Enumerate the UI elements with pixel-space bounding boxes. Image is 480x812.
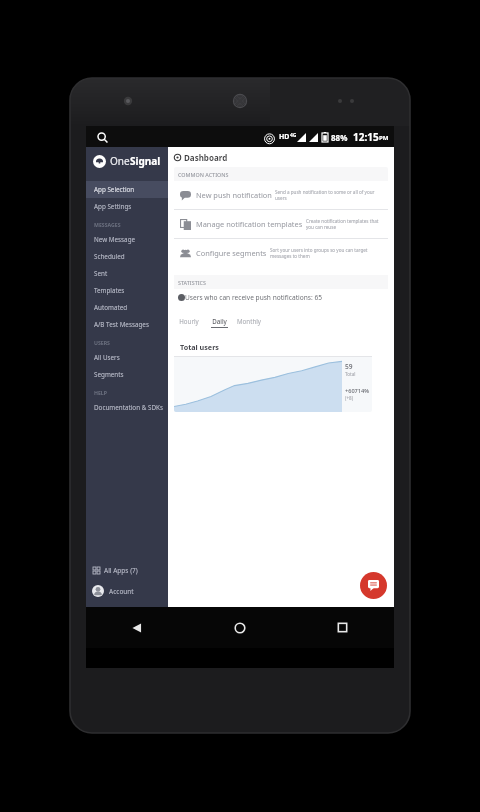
staticText: App Settings bbox=[94, 202, 132, 211]
button[interactable]: Back bbox=[86, 607, 188, 648]
staticText: STATISTICS bbox=[178, 279, 206, 286]
staticText: Automated bbox=[94, 303, 128, 312]
staticText: PM bbox=[379, 134, 389, 142]
staticText: Monthly bbox=[237, 317, 261, 325]
button[interactable]: Search bbox=[94, 129, 110, 145]
staticText: Templates bbox=[94, 286, 125, 295]
staticText: Dashboard bbox=[184, 152, 228, 163]
staticText: Sent bbox=[94, 269, 108, 278]
staticText: A/B Test Messages bbox=[94, 320, 149, 329]
button[interactable]: Documentation & SDKs bbox=[86, 399, 168, 416]
button[interactable]: Templates bbox=[86, 282, 168, 299]
staticText: Configure segments bbox=[196, 248, 267, 258]
staticText: COMMON ACTIONS bbox=[178, 171, 229, 178]
button[interactable]: Automated bbox=[86, 299, 168, 316]
staticText: One bbox=[110, 154, 130, 168]
staticText: Total bbox=[345, 371, 356, 377]
staticText: (+8) bbox=[345, 395, 354, 401]
staticText: USERS bbox=[94, 339, 110, 346]
button[interactable]: All Users bbox=[86, 349, 168, 366]
staticText: Documentation & SDKs bbox=[94, 403, 163, 412]
staticText: Total users bbox=[180, 342, 219, 352]
button[interactable]: Account bbox=[86, 579, 168, 603]
staticText: 12:15 bbox=[353, 130, 379, 144]
button[interactable]: A/B Test Messages bbox=[86, 316, 168, 333]
button[interactable]: Configure segments bbox=[174, 239, 388, 267]
button[interactable]: All Apps (7) bbox=[86, 561, 168, 579]
staticText: +60714% bbox=[345, 387, 369, 395]
staticText: Signal bbox=[130, 154, 161, 168]
staticText: HELP bbox=[94, 389, 107, 396]
button[interactable]: App Selection bbox=[86, 181, 168, 198]
button[interactable]: New Message bbox=[86, 231, 168, 248]
button[interactable]: Home bbox=[188, 607, 291, 648]
button[interactable]: One bbox=[86, 147, 168, 175]
staticText: MESSAGES bbox=[94, 221, 121, 228]
button[interactable]: Hourly bbox=[174, 315, 204, 330]
button[interactable]: App Settings bbox=[86, 198, 168, 215]
staticText: All Apps (7) bbox=[104, 566, 138, 575]
button[interactable]: Segments bbox=[86, 366, 168, 383]
staticText: Send a push notification to some or all … bbox=[275, 189, 383, 201]
staticText: Manage notification templates bbox=[196, 219, 303, 229]
staticText: Hourly bbox=[179, 317, 199, 325]
button[interactable]: Support chat bbox=[360, 572, 387, 599]
staticText: Users who can receive push notifications… bbox=[185, 293, 322, 302]
button[interactable]: Recent apps bbox=[291, 607, 394, 648]
button[interactable]: New push notification bbox=[174, 181, 388, 209]
staticText: Segments bbox=[94, 370, 124, 379]
staticText: New push notification bbox=[196, 190, 272, 200]
staticText: 88% bbox=[331, 132, 348, 143]
staticText: App Selection bbox=[94, 185, 135, 194]
button[interactable]: Sent bbox=[86, 265, 168, 282]
staticText: 59 bbox=[345, 362, 353, 371]
button[interactable]: Monthly bbox=[234, 315, 264, 330]
staticText: Sort your users into groups so you can t… bbox=[270, 247, 383, 259]
staticText: 4G bbox=[290, 132, 297, 139]
button[interactable]: Total users bbox=[174, 337, 372, 412]
staticText: Daily bbox=[212, 317, 227, 325]
button[interactable]: Manage notification templates bbox=[174, 210, 388, 238]
button[interactable]: Daily bbox=[204, 315, 234, 330]
button[interactable]: Users who can receive push notifications… bbox=[174, 289, 388, 306]
staticText: Scheduled bbox=[94, 252, 125, 261]
staticText: HD bbox=[279, 132, 290, 142]
staticText: Account bbox=[109, 587, 134, 596]
staticText: All Users bbox=[94, 353, 120, 362]
staticText: New Message bbox=[94, 235, 136, 244]
staticText: Create notification templates that you c… bbox=[306, 218, 383, 230]
button[interactable]: Scheduled bbox=[86, 248, 168, 265]
